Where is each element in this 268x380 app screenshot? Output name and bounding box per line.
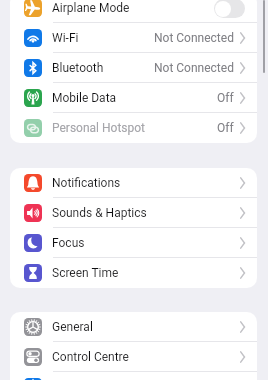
button[interactable]: Sounds & Haptics [10, 198, 257, 228]
staticText: General [52, 320, 93, 334]
staticText: Focus [52, 236, 85, 250]
staticText: Notifications [52, 176, 121, 190]
staticText: Mobile Data [52, 91, 117, 105]
button[interactable]: General [10, 312, 257, 342]
button[interactable]: Display & Brightness [10, 372, 257, 380]
staticText: Sounds & Haptics [52, 206, 147, 220]
staticText: Not Connected [154, 61, 234, 75]
staticText: Off [217, 91, 234, 105]
staticText: Wi-Fi [52, 31, 79, 45]
button[interactable]: Screen Time [10, 258, 257, 288]
staticText: Off [217, 121, 234, 135]
staticText: Not Connected [154, 31, 234, 45]
staticText: Personal Hotspot [52, 121, 146, 135]
button[interactable]: Notifications [10, 168, 257, 198]
button[interactable]: Wi-Fi [10, 23, 257, 53]
button[interactable]: Airplane Mode toggle [214, 0, 245, 18]
button[interactable]: Bluetooth [10, 53, 257, 83]
button[interactable]: Mobile Data [10, 83, 257, 113]
staticText: Screen Time [52, 266, 119, 280]
button[interactable]: Airplane Mode [10, 0, 257, 23]
button[interactable]: Personal Hotspot [10, 113, 257, 143]
staticText: Bluetooth [52, 61, 104, 75]
staticText: Control Centre [52, 350, 129, 364]
button[interactable]: Control Centre [10, 342, 257, 372]
button[interactable]: Focus [10, 228, 257, 258]
staticText: Airplane Mode [52, 1, 130, 15]
